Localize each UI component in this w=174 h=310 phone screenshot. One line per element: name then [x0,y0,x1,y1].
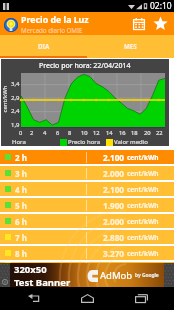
button[interactable]: 8 h [0,246,174,260]
staticText: 3.270 [103,248,125,259]
staticText: Precio hora [68,138,101,146]
staticText: 4 h [15,184,27,195]
staticText: 2.100 [103,184,125,195]
staticText: 2.000 [103,216,125,227]
staticText: 3 h [15,168,27,179]
staticText: by Google [135,272,159,279]
button[interactable]: DIA [0,35,87,56]
button[interactable]: 5 h [0,198,174,212]
staticText: Hora [12,138,26,146]
staticText: 20 [144,129,151,137]
button[interactable]: MES [87,35,174,56]
staticText: 16 [119,129,126,137]
staticText: cent/kWh [127,153,159,162]
staticText: cent/kWh [127,217,159,226]
staticText: DIA [38,42,50,50]
staticText: Precio por hora: 22/04/2014 [39,61,131,71]
staticText: cent/kWh [1,80,9,118]
button[interactable]: 7 h [0,230,174,244]
staticText: 12 [93,129,100,137]
staticText: Precio de la Luz [21,14,89,26]
button[interactable]: 9 h [0,262,174,263]
staticText: 320x50 [14,263,47,276]
staticText: 6 [56,129,60,137]
staticText: 10 [81,129,88,137]
staticText: 2,9 [11,94,20,102]
staticText: cent/kWh [127,201,159,210]
staticText: 2,4 [11,107,20,115]
staticText: cent/kWh [127,185,159,194]
button[interactable]: Recents [121,287,161,310]
staticText: MES [124,42,137,50]
button[interactable]: 3 h [0,166,174,180]
staticText: 8 h [15,248,27,259]
staticText: 14 [106,129,113,137]
button[interactable]: 4 h [0,182,174,196]
staticText: cent/kWh [127,169,159,178]
button[interactable]: Home [67,287,107,310]
button[interactable]: Back [14,287,54,310]
staticText: 4 [43,129,47,137]
staticText: 02:10 [150,0,172,12]
staticText: Valor medio [114,138,148,146]
button[interactable]: 2 h [0,150,174,164]
staticText: 7 h [15,232,27,243]
staticText: 1,9 [11,121,20,129]
staticText: Test Banner [14,276,71,287]
staticText: 1.900 [103,200,125,211]
staticText: 18 [131,129,138,137]
staticText: 2.880 [103,232,125,243]
staticText: cent/kWh [127,249,159,258]
staticText: 22 [156,129,163,137]
button[interactable]: Favorite [149,12,172,35]
staticText: 2.000 [103,168,125,179]
button[interactable]: Calendar [128,12,149,35]
button[interactable]: 6 h [0,214,174,228]
staticText: 3.300 [103,262,125,263]
staticText: 2 h [15,152,27,163]
staticText: 0 [19,129,23,137]
staticText: 5 h [15,200,27,211]
staticText: 8 [68,129,72,137]
staticText: cent/kWh [127,233,159,242]
staticText: 6 h [15,216,27,227]
staticText: 2.100 [103,152,125,163]
staticText: 2 [30,129,34,137]
staticText: AdMob [100,269,133,282]
staticText: 3,4 [11,80,20,88]
staticText: Mercado diario OMIE [21,26,83,34]
